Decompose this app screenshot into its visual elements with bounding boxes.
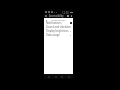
button[interactable]: Data usage <box>44 33 73 37</box>
button[interactable]: Library <box>59 74 64 79</box>
button[interactable]: Back <box>45 19 47 21</box>
button[interactable]: Profile <box>66 74 71 79</box>
staticText: Preferences <box>44 18 73 21</box>
button[interactable]: Search <box>53 74 58 79</box>
button[interactable]: Search <box>66 14 69 17</box>
staticText: Accessibility <box>49 14 64 18</box>
button[interactable]: More options <box>70 14 73 17</box>
button[interactable]: Home <box>46 74 51 79</box>
button[interactable]: Sound and vibration <box>44 25 73 29</box>
staticText: 12:30 <box>62 11 69 14</box>
staticText: Sound and vibration <box>46 25 71 29</box>
staticText: Data usage <box>46 33 60 37</box>
button[interactable]: Display brightness <box>44 29 73 33</box>
staticText: Display brightness <box>46 29 69 33</box>
button[interactable]: Notifications <box>44 21 73 25</box>
staticText: Notifications <box>46 21 62 25</box>
